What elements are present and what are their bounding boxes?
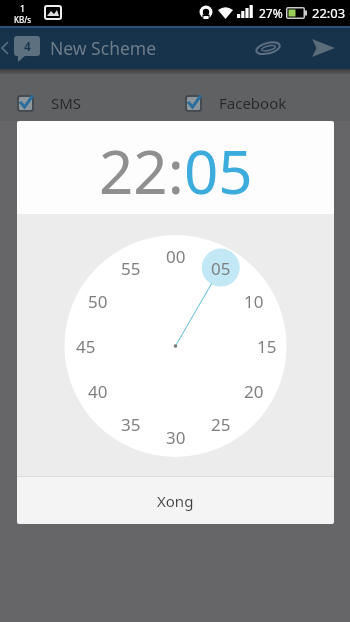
button[interactable]: 4 <box>0 26 46 69</box>
staticText: 35 <box>121 413 141 435</box>
staticText: 1 <box>20 2 26 14</box>
button[interactable] <box>246 26 289 69</box>
staticText: 45 <box>76 335 96 357</box>
staticText: 25 <box>211 413 231 435</box>
staticText: 10 <box>244 290 264 312</box>
staticText: 50 <box>88 290 108 312</box>
staticText: 05 <box>211 257 231 279</box>
staticText: 30 <box>166 426 186 448</box>
button[interactable]: Xong <box>17 477 334 524</box>
staticText: Xong <box>157 491 194 511</box>
staticText: New Scheme <box>50 36 157 60</box>
button[interactable]: SMS <box>18 93 82 113</box>
staticText: 27% <box>259 5 283 21</box>
staticText: Facebook <box>219 93 287 113</box>
staticText: 05 <box>184 130 253 212</box>
staticText: 40 <box>88 380 108 402</box>
staticText: 20 <box>244 380 264 402</box>
button[interactable] <box>301 26 345 69</box>
staticText: SMS <box>51 93 82 113</box>
staticText: 22: <box>99 130 184 212</box>
staticText: 4 <box>24 38 31 54</box>
staticText: 22:03 <box>312 4 346 22</box>
staticText: 00 <box>166 245 186 267</box>
staticText: 15 <box>257 335 277 357</box>
button[interactable]: Facebook <box>186 93 287 113</box>
staticText: 55 <box>121 257 141 279</box>
staticText: KB/s <box>14 14 31 25</box>
